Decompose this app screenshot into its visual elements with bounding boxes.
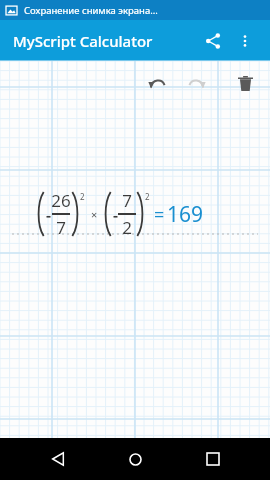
staticText: 2 xyxy=(145,191,150,202)
button[interactable]: Recents xyxy=(193,439,233,479)
staticText: MyScript Calculator xyxy=(13,31,196,51)
button[interactable]: Delete xyxy=(228,66,262,100)
staticText: Сохранение снимка экрана... xyxy=(24,4,158,17)
button[interactable]: Share xyxy=(196,24,230,58)
staticText: × xyxy=(91,207,98,222)
staticText: 7 xyxy=(56,216,66,239)
button[interactable]: More options xyxy=(230,26,260,56)
staticText: 169 xyxy=(167,200,204,229)
staticText: 2 xyxy=(80,191,85,202)
button[interactable]: Back xyxy=(38,439,78,479)
button[interactable]: Home xyxy=(115,439,155,479)
button[interactable]: Redo xyxy=(180,66,214,100)
staticText: 2 xyxy=(122,216,132,239)
staticText: = xyxy=(154,202,165,227)
button[interactable]: Undo xyxy=(140,66,174,100)
staticText: 7 xyxy=(122,189,132,212)
staticText: 26 xyxy=(51,189,71,212)
